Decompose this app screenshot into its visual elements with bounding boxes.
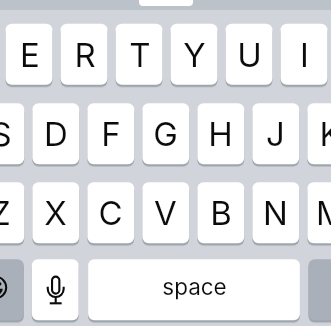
button[interactable]: T [116,24,163,85]
staticText: G [153,114,178,154]
button[interactable]: B [197,182,244,243]
staticText: N [263,193,288,233]
staticText: J [266,114,285,154]
button[interactable]: I [281,24,328,85]
button[interactable]: S [0,103,24,164]
staticText: B [210,193,232,233]
button[interactable]: Z [0,182,24,243]
staticText: T [129,35,151,75]
button[interactable]: N [252,182,299,243]
staticText: D [44,114,68,154]
button[interactable] [139,0,193,6]
button[interactable]: J [252,103,299,164]
button[interactable]: H [197,103,244,164]
staticText: R [74,35,96,75]
button[interactable]: C [87,182,134,243]
staticText: C [98,193,123,233]
button[interactable]: G [142,103,189,164]
staticText: H [208,114,233,154]
staticText: S [0,114,12,154]
staticText: E [20,35,40,75]
button[interactable]: Y [171,24,218,85]
staticText: Z [0,193,11,233]
staticText: M [316,193,331,233]
staticText: V [154,193,177,233]
button[interactable]: Emoji [0,259,24,320]
button[interactable]: D [32,103,79,164]
button[interactable]: Dictate [32,259,79,320]
button[interactable]: space [88,259,300,320]
button[interactable]: F [87,103,134,164]
staticText: U [237,35,262,75]
button[interactable]: K [307,103,331,164]
staticText: X [44,193,67,233]
button[interactable]: U [226,24,273,85]
button[interactable]: X [32,182,79,243]
staticText: F [101,114,121,154]
staticText: K [319,114,331,154]
staticText: I [300,35,309,75]
staticText: space [162,273,227,300]
button[interactable]: R [61,24,108,85]
button[interactable]: E [6,24,53,85]
button[interactable]: V [142,182,189,243]
staticText: Y [183,35,206,75]
button[interactable]: M [307,182,331,243]
